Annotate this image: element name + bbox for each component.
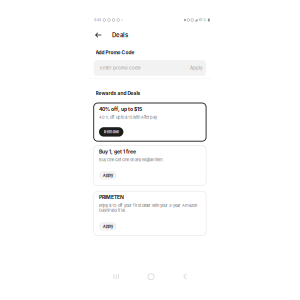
staticText: Buy One Get One on any eligible item bbox=[99, 157, 163, 162]
button[interactable]: Back bbox=[179, 270, 191, 282]
button[interactable]: Home bbox=[145, 271, 157, 283]
staticText: Apply bbox=[103, 173, 113, 178]
staticText: Add Promo Code bbox=[95, 49, 134, 55]
staticText: PRIMETEN bbox=[99, 194, 124, 200]
button[interactable]: Apply bbox=[99, 171, 117, 180]
button[interactable]: Recent apps bbox=[110, 271, 122, 283]
staticText: Rewards and Deals bbox=[95, 90, 140, 96]
staticText: Apply bbox=[103, 224, 113, 229]
staticText: Deals bbox=[112, 31, 128, 39]
button[interactable]: Back bbox=[92, 29, 104, 41]
staticText: 40% off up to $15 with Afterpay bbox=[99, 115, 157, 120]
button[interactable]: Apply bbox=[99, 222, 117, 231]
staticText: Enjoy $10 off your first order with your… bbox=[99, 203, 197, 213]
staticText: Enter promo code bbox=[100, 65, 141, 71]
staticText: 3:43 bbox=[94, 18, 101, 22]
button[interactable]: Apply bbox=[190, 65, 202, 71]
staticText: Remove bbox=[104, 129, 119, 134]
staticText: 40% off, up to $15 bbox=[99, 106, 142, 112]
button[interactable]: Remove bbox=[99, 127, 123, 137]
staticText: 61% bbox=[199, 18, 207, 22]
staticText: Apply bbox=[190, 65, 202, 71]
staticText: Buy 1, get 1 free bbox=[99, 149, 136, 155]
